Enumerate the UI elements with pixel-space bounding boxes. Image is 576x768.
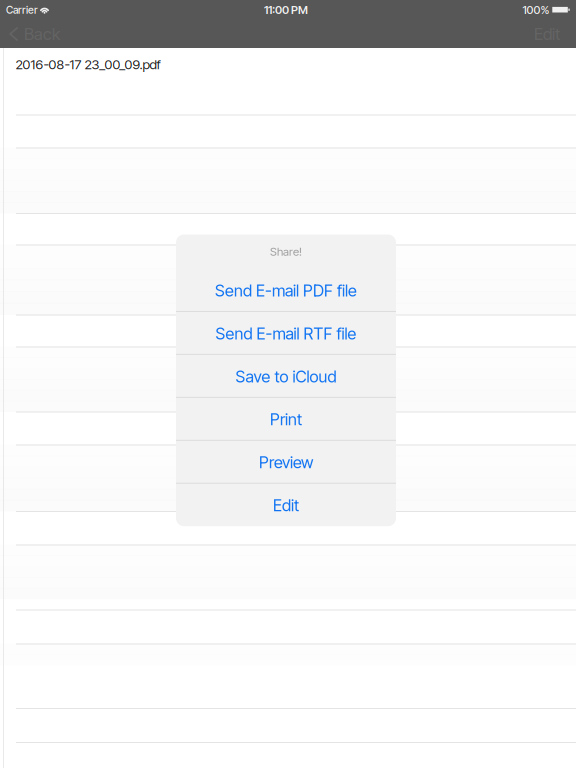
staticText: 100% (522, 3, 549, 17)
staticText: Save to iCloud (235, 367, 336, 386)
button[interactable]: Print (176, 397, 396, 440)
button[interactable]: Send E-mail PDF file (176, 268, 396, 311)
button[interactable]: Back (0, 20, 68, 48)
button[interactable]: Edit (176, 483, 396, 526)
staticText: Send E-mail RTF file (215, 324, 356, 343)
staticText: Preview (259, 452, 313, 472)
button[interactable]: Save to iCloud (176, 354, 396, 397)
button[interactable]: Send E-mail RTF file (176, 311, 396, 354)
staticText: Send E-mail PDF file (215, 281, 357, 300)
button[interactable]: Edit (524, 20, 576, 48)
staticText: Carrier (6, 4, 38, 16)
staticText: Share! (270, 245, 302, 259)
staticText: Edit (534, 24, 560, 44)
staticText: Edit (273, 495, 299, 515)
staticText: Print (270, 410, 302, 429)
staticText: 11:00 PM (264, 3, 308, 17)
staticText: Back (24, 24, 60, 44)
staticText: 2016-08-17 23_00_09.pdf (15, 56, 160, 72)
button[interactable]: Preview (176, 440, 396, 483)
